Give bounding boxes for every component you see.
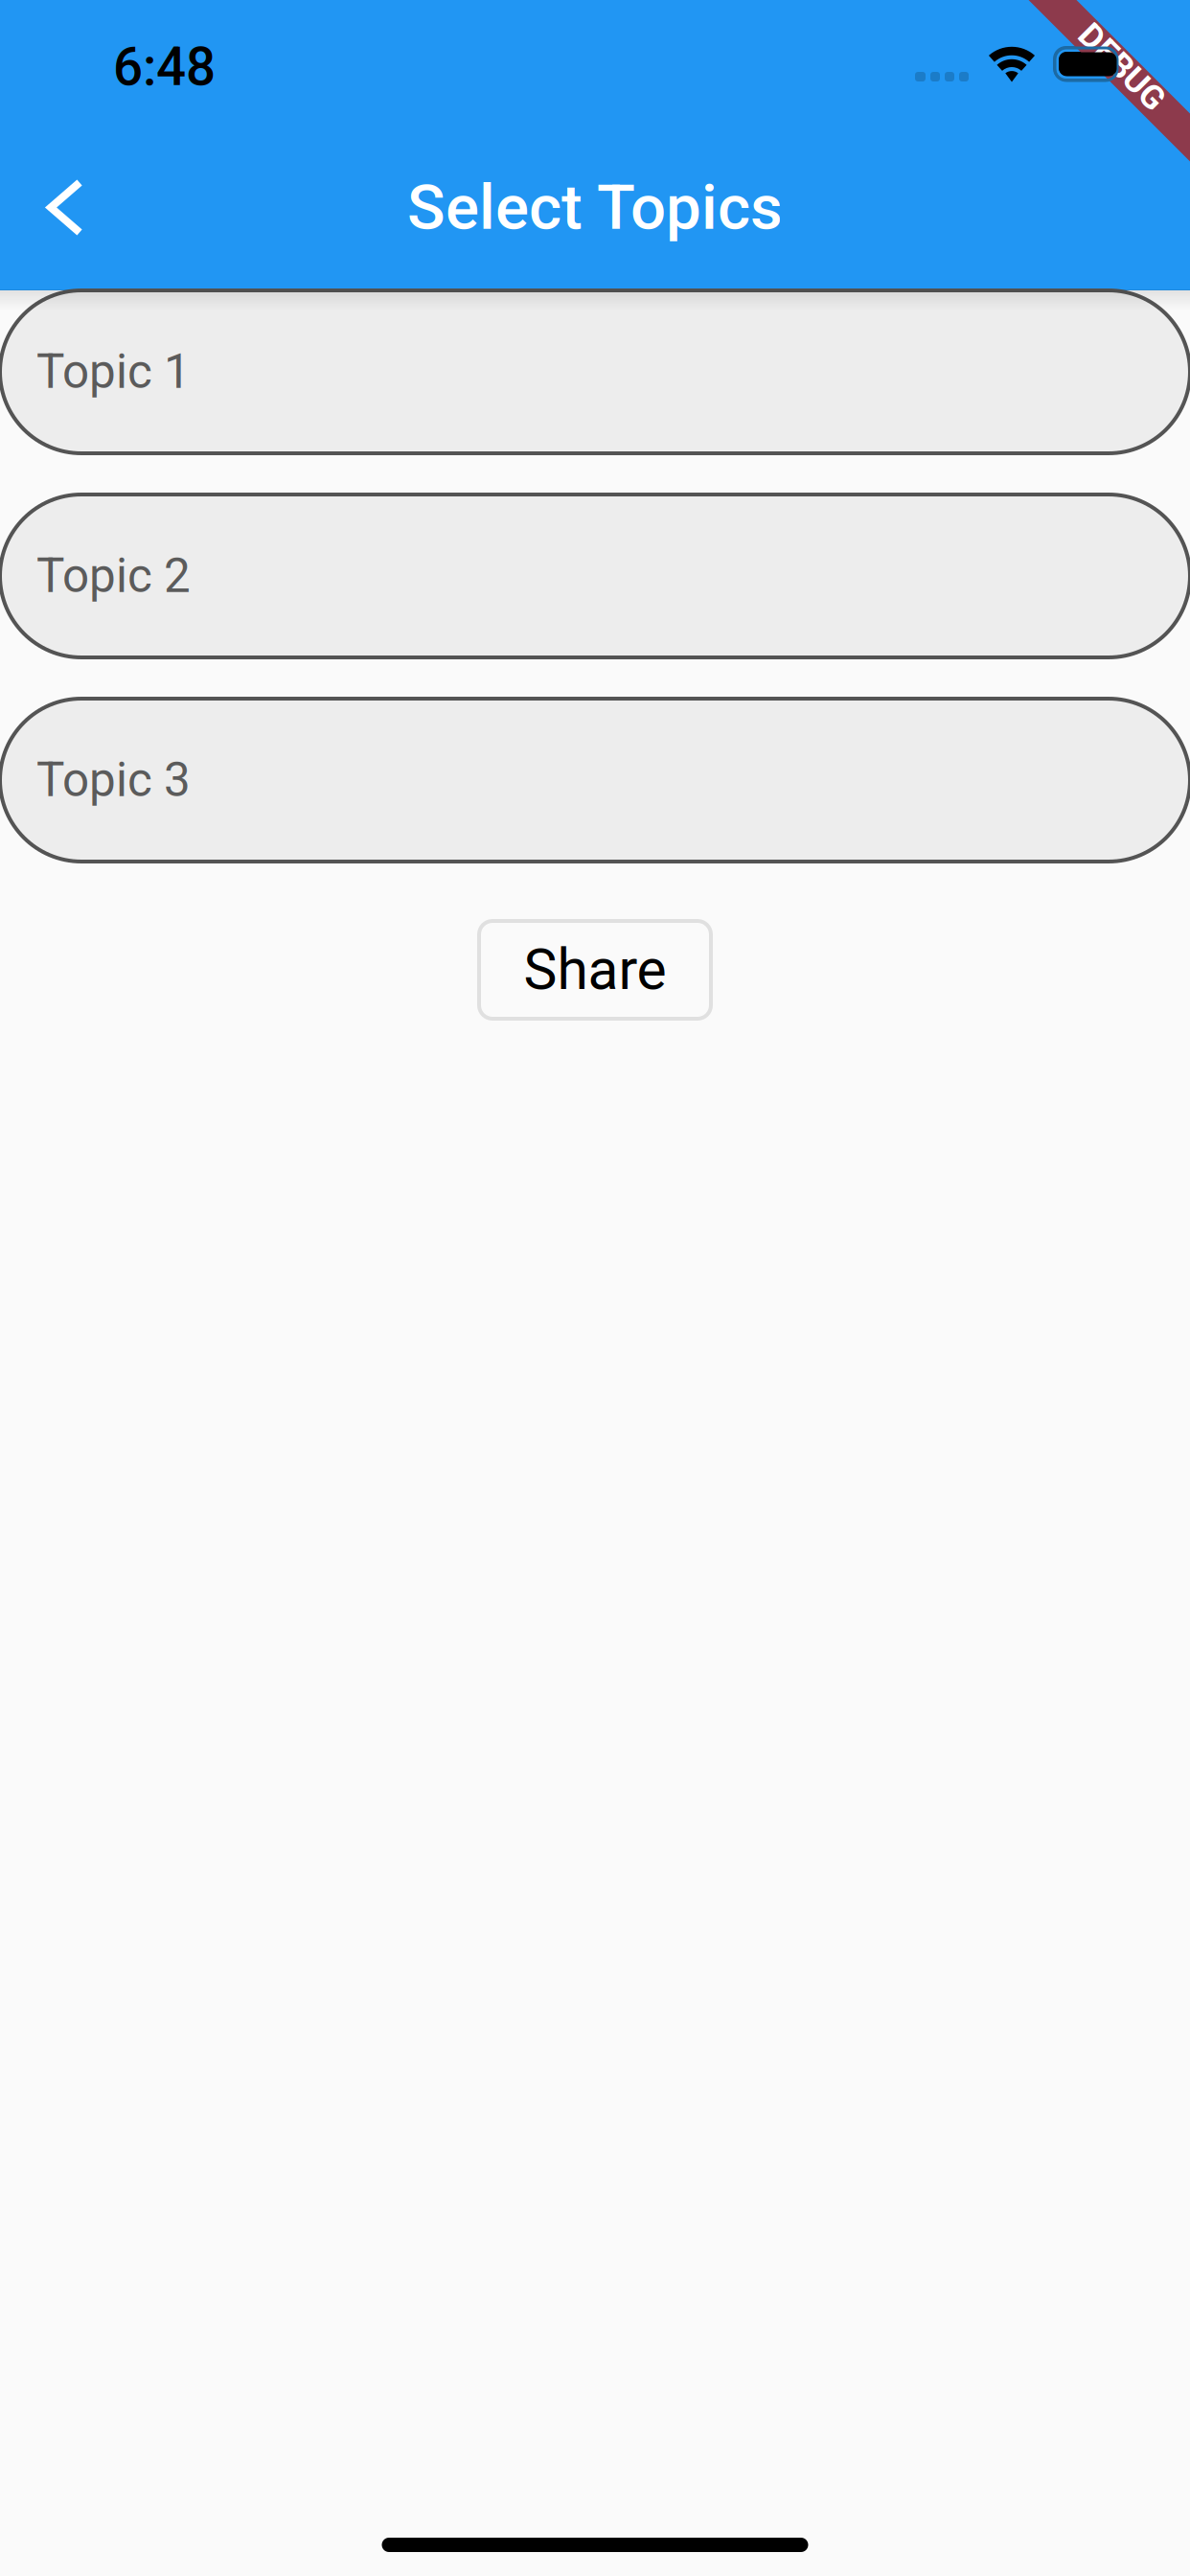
staticText: Select Topics xyxy=(407,171,783,244)
staticText: Topic 3 xyxy=(36,752,191,808)
staticText: 6:48 xyxy=(113,36,216,98)
staticText: DEBUG xyxy=(1068,48,1176,87)
staticText: Topic 2 xyxy=(36,548,191,604)
button[interactable]: Topic 1 xyxy=(0,290,1190,453)
staticText: Topic 1 xyxy=(36,344,191,400)
staticText: Share xyxy=(524,937,666,1003)
button[interactable]: Back xyxy=(12,155,118,260)
button[interactable]: Topic 2 xyxy=(0,494,1190,657)
button[interactable]: Share xyxy=(479,921,711,1019)
button[interactable]: Topic 3 xyxy=(0,699,1190,862)
